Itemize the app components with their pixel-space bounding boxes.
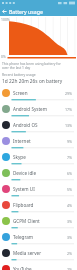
staticText: Screen <box>13 90 65 96</box>
staticText: 17% <box>65 107 73 112</box>
staticText: 5% <box>67 187 73 192</box>
staticText: 100% <box>1 17 10 22</box>
staticText: Android System <box>13 106 65 112</box>
staticText: This phone has been using battery for <box>2 61 61 65</box>
button[interactable]: YouTube <box>0 263 77 270</box>
staticText: Telegram <box>13 234 67 240</box>
button[interactable]: Screen <box>0 87 77 103</box>
staticText: Flipboard <box>13 202 67 208</box>
button[interactable]: Navigate up <box>0 6 9 16</box>
staticText: 4% <box>67 203 73 208</box>
staticText: 3% <box>67 219 73 224</box>
staticText: 13% <box>65 123 73 128</box>
staticText: Recent battery usage <box>2 72 36 77</box>
staticText: GCPM Client <box>13 218 67 224</box>
staticText: 7% <box>67 155 73 160</box>
staticText: 1d 22h 20m 26s on battery <box>2 78 63 85</box>
button[interactable]: Device idle <box>0 167 77 183</box>
staticText: Skype <box>13 154 67 160</box>
button[interactable]: Android OS <box>0 119 77 135</box>
staticText: 0% <box>1 54 6 59</box>
button[interactable]: System UI <box>0 183 77 199</box>
staticText: Media server <box>13 250 67 256</box>
staticText: 29% <box>65 91 73 96</box>
button[interactable]: Media server <box>0 247 77 263</box>
staticText: YouTube <box>13 266 67 270</box>
button[interactable]: Flipboard <box>0 199 77 215</box>
button[interactable]: Android System <box>0 103 77 119</box>
staticText: 2% <box>67 251 73 256</box>
button[interactable]: GCPM Client <box>0 215 77 231</box>
staticText: Internet <box>13 138 67 144</box>
staticText: Device idle <box>13 170 67 176</box>
staticText: Battery usage <box>9 8 43 15</box>
staticText: 3% <box>67 235 73 240</box>
button[interactable]: Internet <box>0 135 77 151</box>
staticText: System UI <box>13 186 67 192</box>
staticText: over the last 1 day <box>2 65 31 69</box>
staticText: 6% <box>67 171 73 176</box>
button[interactable]: Skype <box>0 151 77 167</box>
staticText: Android OS <box>13 122 65 128</box>
staticText: 9% <box>67 139 73 144</box>
staticText: 2% <box>67 267 73 270</box>
button[interactable]: Telegram <box>0 231 77 247</box>
